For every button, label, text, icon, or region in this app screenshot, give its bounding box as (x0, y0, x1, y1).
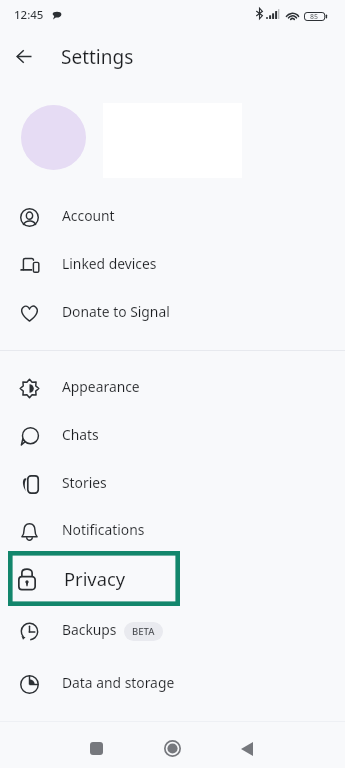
staticText: Data and storage (62, 673, 175, 692)
staticText: 12:45 (14, 7, 44, 23)
staticText: Donate to Signal (62, 302, 170, 321)
button[interactable]: Notifications (0, 507, 345, 555)
staticText: Notifications (62, 520, 145, 539)
staticText: Privacy (64, 566, 126, 591)
button[interactable]: Linked devices (0, 241, 345, 289)
button[interactable]: Account (0, 193, 345, 241)
staticText: BETA (132, 625, 155, 638)
button[interactable]: Donate to Signal (0, 289, 345, 337)
staticText: Settings (61, 44, 134, 70)
button[interactable]: Home (154, 730, 191, 767)
button[interactable]: Chats (0, 412, 345, 460)
button[interactable]: Backups (0, 607, 345, 655)
button[interactable]: Data and storage (0, 660, 345, 708)
staticText: Chats (62, 425, 99, 444)
staticText: Stories (62, 473, 107, 492)
staticText: Backups (62, 620, 117, 639)
staticText: 85 (310, 12, 319, 21)
staticText: Appearance (62, 377, 140, 396)
button[interactable]: Appearance (0, 364, 345, 412)
button[interactable]: Stories (0, 460, 345, 508)
button[interactable] (0, 88, 345, 186)
staticText: Linked devices (62, 254, 157, 273)
button[interactable]: Navigate up (6, 38, 42, 74)
button[interactable]: Recent apps (78, 730, 115, 767)
button[interactable]: Back (228, 730, 265, 767)
staticText: Account (62, 206, 115, 225)
button[interactable]: Privacy (8, 551, 180, 606)
